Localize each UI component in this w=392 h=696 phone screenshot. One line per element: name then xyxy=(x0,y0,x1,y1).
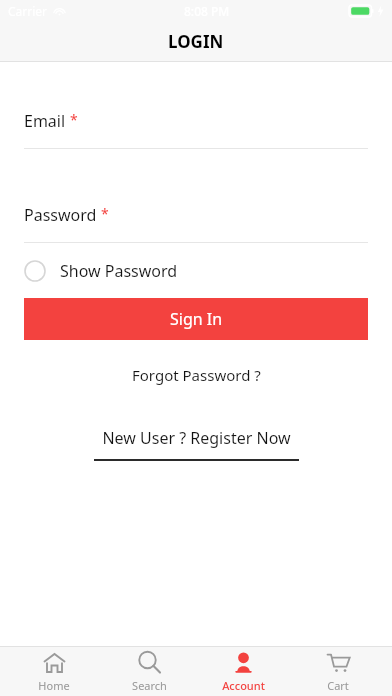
staticText: * xyxy=(70,110,78,129)
staticText: LOGIN xyxy=(168,30,224,53)
button[interactable]: Account xyxy=(203,647,283,696)
staticText: Sign In xyxy=(170,308,223,330)
button[interactable]: Show Password xyxy=(24,256,178,286)
staticText: 8:08 PM xyxy=(184,3,230,19)
staticText: Home xyxy=(38,678,70,693)
other: Home xyxy=(42,650,67,675)
staticText: Email xyxy=(24,110,66,132)
button[interactable]: New User ? Register Now xyxy=(94,427,299,461)
other: Cart xyxy=(326,650,351,675)
button[interactable]: Forgot Password ? xyxy=(0,361,392,389)
staticText: Search xyxy=(132,678,167,693)
staticText: Forgot Password ? xyxy=(132,365,261,385)
button[interactable]: Search xyxy=(109,647,189,696)
staticText: * xyxy=(101,204,109,223)
other: Account xyxy=(231,650,256,675)
button[interactable]: Sign In xyxy=(24,298,368,340)
staticText: Password xyxy=(24,204,97,226)
other: Search xyxy=(137,650,162,675)
staticText: New User ? Register Now xyxy=(102,427,291,449)
staticText: Account xyxy=(222,678,265,693)
button[interactable]: Cart xyxy=(298,647,378,696)
staticText: Show Password xyxy=(60,260,178,282)
staticText: Cart xyxy=(327,678,349,693)
button[interactable]: Home xyxy=(14,647,94,696)
